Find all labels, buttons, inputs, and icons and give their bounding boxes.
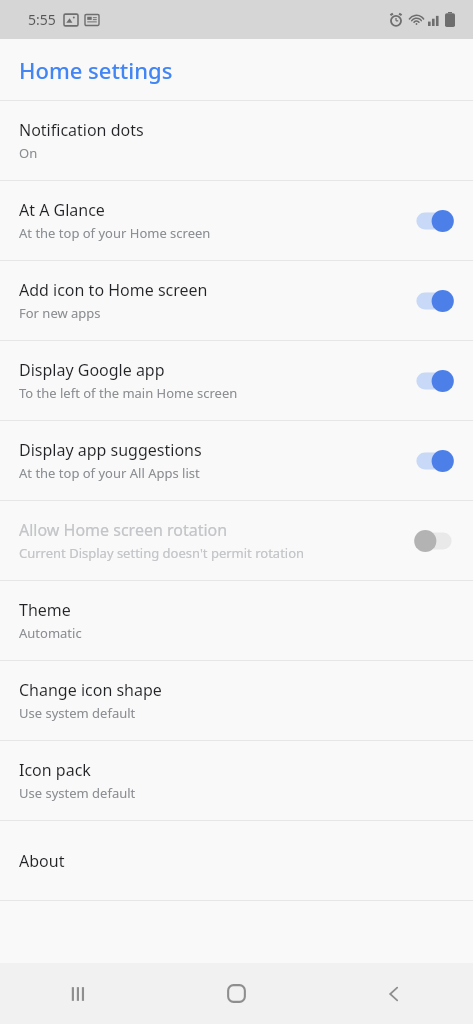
button[interactable]: Notification dots — [0, 101, 473, 180]
button[interactable]: Icon pack — [0, 741, 473, 820]
staticText: Use system default — [19, 704, 136, 722]
staticText: At the top of your All Apps list — [19, 464, 200, 482]
staticText: To the left of the main Home screen — [19, 384, 238, 402]
staticText: On — [19, 144, 38, 162]
button[interactable]: Display Google app — [0, 341, 473, 420]
staticText: Display app suggestions — [19, 439, 202, 461]
staticText: Use system default — [19, 784, 136, 802]
staticText: Add icon to Home screen — [19, 279, 208, 301]
staticText: Automatic — [19, 624, 82, 642]
button[interactable]: At A Glance — [0, 181, 473, 260]
staticText: About — [19, 850, 65, 872]
button[interactable]: Toggle on — [412, 446, 456, 476]
staticText: Current Display setting doesn't permit r… — [19, 544, 305, 562]
button[interactable]: Theme — [0, 581, 473, 660]
staticText: 5:55 — [28, 10, 56, 29]
staticText: For new apps — [19, 304, 101, 322]
button[interactable]: Toggle off — [412, 526, 456, 556]
button[interactable]: Allow Home screen rotation — [0, 501, 473, 580]
staticText: Icon pack — [19, 759, 91, 781]
staticText: Theme — [19, 599, 71, 621]
button[interactable]: Add icon to Home screen — [0, 261, 473, 340]
staticText: Home settings — [19, 55, 173, 85]
button[interactable]: Recent apps — [0, 963, 157, 1024]
button[interactable]: Change icon shape — [0, 661, 473, 740]
button[interactable]: Toggle on — [412, 286, 456, 316]
staticText: At the top of your Home screen — [19, 224, 211, 242]
staticText: Display Google app — [19, 359, 165, 381]
staticText: Change icon shape — [19, 679, 162, 701]
button[interactable]: About — [0, 821, 473, 900]
staticText: Allow Home screen rotation — [19, 519, 228, 541]
staticText: At A Glance — [19, 199, 105, 221]
button[interactable]: Back — [315, 963, 473, 1024]
button[interactable]: Toggle on — [412, 206, 456, 236]
button[interactable]: Home — [157, 963, 315, 1024]
button[interactable]: Toggle on — [412, 366, 456, 396]
staticText: Notification dots — [19, 119, 144, 141]
button[interactable]: Display app suggestions — [0, 421, 473, 500]
